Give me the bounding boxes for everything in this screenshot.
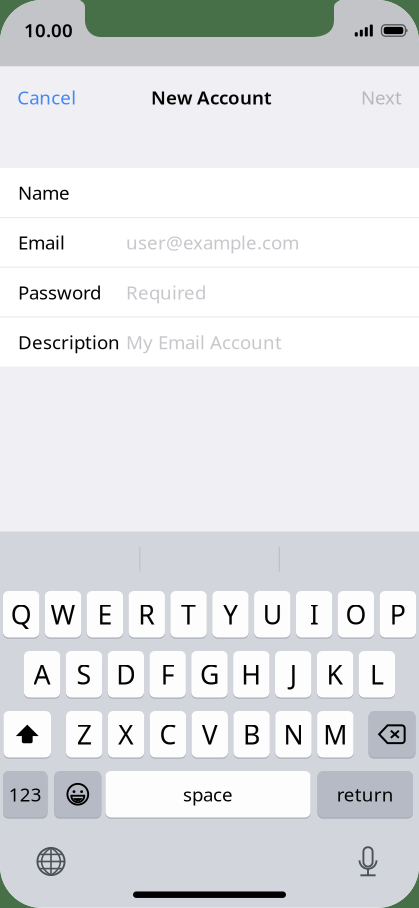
button[interactable]: Next	[355, 74, 408, 121]
button[interactable]: A	[24, 650, 60, 698]
button[interactable]: R	[128, 590, 165, 638]
button[interactable]: Cancel	[11, 74, 82, 121]
staticText: return	[337, 782, 394, 807]
staticText: M	[323, 716, 347, 752]
staticText: Cancel	[17, 85, 76, 110]
staticText: space	[183, 782, 233, 807]
staticText: Email	[18, 230, 65, 255]
button[interactable]: Q	[3, 590, 39, 638]
button[interactable]: J	[275, 650, 311, 698]
button[interactable]: return	[317, 770, 413, 818]
button[interactable]: N	[275, 710, 312, 758]
staticText: 123	[9, 782, 42, 807]
staticText: O	[345, 596, 366, 632]
button[interactable]: X	[108, 710, 144, 758]
button[interactable]: Z	[66, 710, 102, 758]
button[interactable]: U	[254, 590, 290, 638]
button[interactable]: M	[317, 710, 353, 758]
button[interactable]: Shift	[3, 710, 51, 758]
staticText: Name	[18, 180, 70, 205]
button[interactable]: Numbers	[3, 770, 47, 818]
button[interactable]: Y	[212, 590, 249, 638]
staticText: user@example.com	[126, 230, 299, 255]
staticText: L	[370, 656, 384, 692]
staticText: U	[263, 596, 282, 632]
button[interactable]: B	[233, 710, 270, 758]
staticText: My Email Account	[126, 330, 282, 354]
button[interactable]: Name	[0, 168, 419, 217]
staticText: Description	[18, 330, 120, 354]
staticText: A	[34, 656, 51, 692]
staticText: E	[97, 596, 112, 632]
button[interactable]: W	[45, 590, 81, 638]
button[interactable]: O	[338, 590, 374, 638]
button[interactable]: P	[380, 590, 416, 638]
button[interactable]: G	[191, 650, 228, 698]
staticText: Password	[18, 280, 101, 305]
button[interactable]: I	[296, 590, 332, 638]
staticText: Required	[126, 280, 206, 305]
button[interactable]: E	[87, 590, 123, 638]
button[interactable]: Next keyboard	[36, 846, 66, 876]
staticText: W	[50, 596, 75, 632]
button[interactable]: Description	[0, 317, 419, 366]
button[interactable]: Dictation	[357, 845, 379, 877]
staticText: B	[243, 716, 260, 752]
staticText: G	[200, 656, 219, 692]
staticText: V	[202, 716, 218, 752]
staticText: N	[283, 716, 303, 752]
staticText: I	[310, 596, 319, 632]
staticText: 10.00	[24, 18, 73, 42]
staticText: New Account	[151, 85, 272, 110]
staticText: K	[327, 656, 344, 692]
button[interactable]: space	[105, 770, 310, 818]
button[interactable]: L	[359, 650, 395, 698]
staticText: S	[76, 656, 91, 692]
button[interactable]: Password	[0, 268, 419, 317]
staticText: J	[290, 656, 297, 692]
button[interactable]: V	[192, 710, 228, 758]
staticText: H	[241, 656, 261, 692]
staticText: Z	[77, 716, 92, 752]
button[interactable]: Emoji	[54, 770, 101, 818]
button[interactable]: S	[66, 650, 102, 698]
button[interactable]: K	[317, 650, 353, 698]
staticText: R	[138, 596, 155, 632]
button[interactable]: Delete	[368, 710, 415, 758]
staticText: Next	[361, 85, 402, 110]
staticText: C	[159, 716, 176, 752]
staticText: Y	[223, 596, 238, 632]
staticText: Q	[11, 596, 32, 632]
staticText: T	[181, 596, 196, 632]
staticText: X	[118, 716, 134, 752]
button[interactable]: F	[149, 650, 186, 698]
button[interactable]: C	[150, 710, 186, 758]
staticText: D	[116, 656, 135, 692]
button[interactable]: T	[170, 590, 207, 638]
staticText: F	[161, 656, 175, 692]
button[interactable]: H	[233, 650, 270, 698]
staticText: P	[390, 596, 406, 632]
button[interactable]: D	[108, 650, 144, 698]
button[interactable]: Email	[0, 218, 419, 267]
